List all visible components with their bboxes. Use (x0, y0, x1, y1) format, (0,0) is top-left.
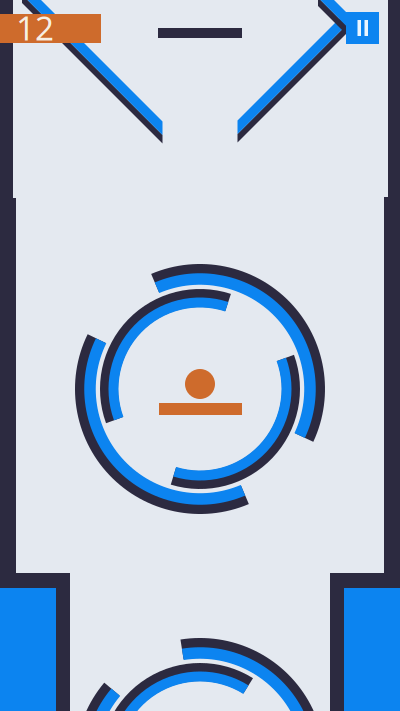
staticText: 12 (16, 5, 54, 50)
button[interactable]: 12 (0, 14, 101, 43)
button[interactable]: Pause (346, 12, 379, 44)
